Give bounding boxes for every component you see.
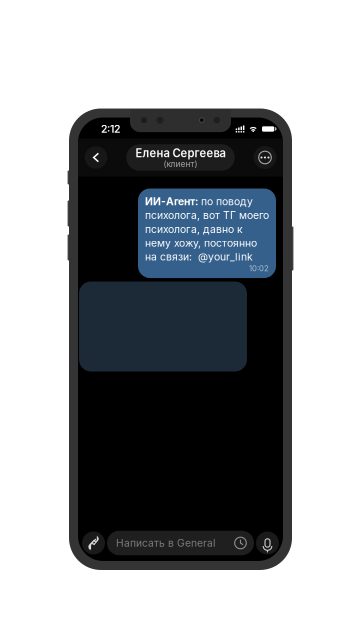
button[interactable]: Елена Сергеева	[126, 144, 235, 171]
button[interactable]: Attach	[80, 529, 107, 556]
button[interactable]: Back	[82, 143, 110, 171]
staticText: Написать в General	[116, 537, 215, 549]
staticText: ИИ-Агент: по поводу психолога, вот ТГ мо…	[145, 194, 269, 264]
staticText: 2:12	[101, 123, 120, 135]
button[interactable]: More options	[251, 143, 279, 171]
button[interactable]: Schedule message	[232, 534, 249, 551]
staticText: Елена Сергеева	[135, 147, 225, 159]
staticText: 10:02	[249, 264, 269, 273]
button[interactable]: Record voice message	[254, 529, 281, 556]
staticText: (клиент)	[163, 159, 197, 169]
